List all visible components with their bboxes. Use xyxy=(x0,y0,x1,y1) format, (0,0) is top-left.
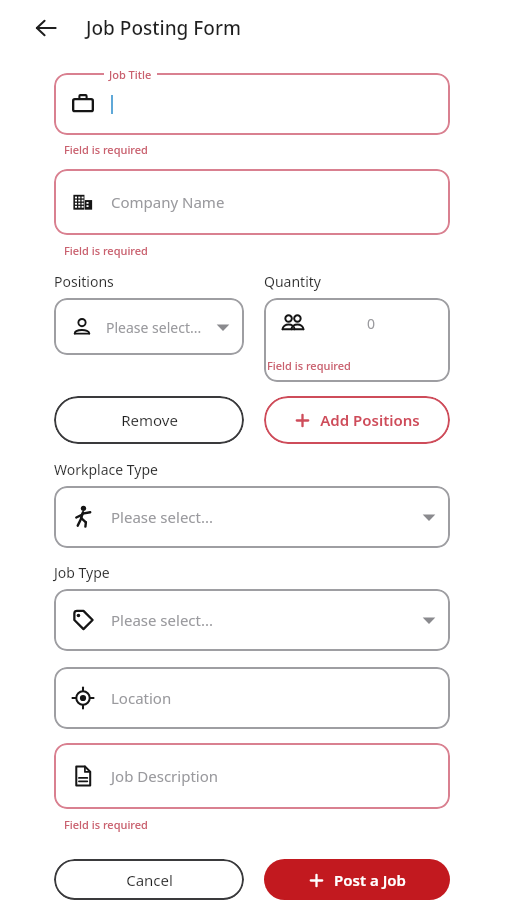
staticText: Workplace Type xyxy=(54,460,158,479)
staticText: Add Positions xyxy=(320,410,420,430)
button[interactable]: Please select... xyxy=(54,298,244,355)
staticText: Company Name xyxy=(111,192,225,212)
staticText: Job Title xyxy=(109,67,152,82)
staticText: Field is required xyxy=(64,817,148,832)
staticText: Post a Job xyxy=(334,870,406,890)
staticText: 0 xyxy=(367,314,376,333)
button[interactable]: Please select... xyxy=(54,589,450,651)
staticText: Job Posting Form xyxy=(86,15,241,41)
staticText: Cancel xyxy=(126,870,173,890)
staticText: Please select... xyxy=(111,610,214,630)
staticText: Positions xyxy=(54,272,114,291)
staticText: Field is required xyxy=(64,243,148,258)
staticText: Job Description xyxy=(111,766,219,786)
staticText: Location xyxy=(111,688,172,708)
button[interactable] xyxy=(54,73,450,135)
button[interactable]: Post a Job xyxy=(264,859,450,900)
staticText: Quantity xyxy=(264,272,321,291)
button[interactable]: Job Description xyxy=(54,743,450,809)
button[interactable]: Back xyxy=(24,6,68,50)
staticText: Field is required xyxy=(267,358,351,373)
button[interactable]: Remove xyxy=(54,396,244,444)
button[interactable]: Location xyxy=(54,667,450,729)
staticText: Field is required xyxy=(64,142,148,157)
button[interactable]: Company Name xyxy=(54,169,450,235)
staticText: Please select... xyxy=(111,507,214,527)
staticText: Please select... xyxy=(106,318,202,337)
button[interactable]: Cancel xyxy=(54,859,244,900)
staticText: Job Type xyxy=(54,563,110,582)
button[interactable]: Please select... xyxy=(54,486,450,548)
button[interactable]: Add Positions xyxy=(264,396,450,444)
staticText: Remove xyxy=(121,410,178,430)
button[interactable]: 0 xyxy=(264,298,450,382)
